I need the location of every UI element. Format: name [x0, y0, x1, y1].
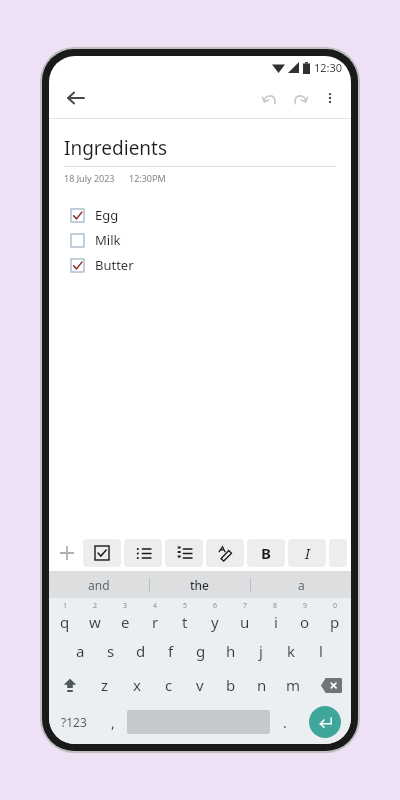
button[interactable]: Egg	[49, 204, 351, 226]
button[interactable]: Checklist	[83, 539, 121, 567]
staticText: and	[88, 577, 110, 593]
button[interactable]: Shift	[49, 668, 91, 702]
staticText: ?123	[61, 714, 87, 730]
button[interactable]: 1	[50, 598, 80, 634]
staticText: z	[101, 675, 109, 695]
button[interactable]: Draw	[206, 539, 244, 567]
staticText: q	[60, 612, 70, 632]
staticText: I	[305, 543, 310, 563]
button[interactable]: x	[123, 668, 151, 702]
button[interactable]: Bold	[247, 539, 285, 567]
staticText: 7	[243, 601, 248, 611]
button[interactable]: ,	[98, 702, 127, 742]
staticText: k	[287, 641, 296, 661]
button[interactable]: s	[96, 634, 126, 668]
staticText: l	[319, 641, 323, 661]
staticText: 0	[333, 601, 338, 611]
button[interactable]: Backspace	[310, 668, 351, 702]
staticText: 4	[153, 601, 158, 611]
staticText: r	[152, 612, 159, 632]
button[interactable]: d	[126, 634, 156, 668]
button[interactable]: z	[91, 668, 119, 702]
staticText: 3	[123, 601, 128, 611]
button[interactable]: 0	[320, 598, 350, 634]
staticText: 5	[183, 601, 188, 611]
staticText: 6	[213, 601, 218, 611]
staticText: 8	[273, 601, 278, 611]
button[interactable]: 9	[290, 598, 320, 634]
button[interactable]: n	[248, 668, 276, 702]
staticText: 12:30	[314, 60, 343, 75]
staticText: 9	[303, 601, 308, 611]
button[interactable]: ?123	[49, 702, 98, 742]
staticText: 18 July 2023	[64, 172, 115, 184]
button[interactable]: Back	[59, 82, 91, 114]
button[interactable]: 5	[170, 598, 200, 634]
button[interactable]: Butter	[49, 254, 351, 276]
button[interactable]: a	[65, 634, 95, 668]
button[interactable]: Add	[51, 537, 83, 569]
staticText: h	[226, 641, 236, 661]
button[interactable]: c	[155, 668, 183, 702]
button[interactable]: .	[270, 702, 299, 742]
staticText: a	[298, 577, 305, 593]
staticText: n	[257, 675, 267, 695]
button[interactable]: m	[279, 668, 307, 702]
button[interactable]: f	[156, 634, 186, 668]
staticText: Ingredients	[64, 135, 168, 161]
button[interactable]: Milk	[49, 229, 351, 251]
staticText: 1	[63, 601, 68, 611]
button[interactable]: 8	[260, 598, 290, 634]
button[interactable]: the	[150, 571, 250, 598]
button[interactable]: Numbered list	[165, 539, 203, 567]
button[interactable]: k	[276, 634, 306, 668]
staticText: w	[89, 612, 101, 632]
staticText: .	[283, 713, 287, 732]
staticText: d	[136, 641, 146, 661]
staticText: u	[240, 612, 250, 632]
button[interactable]: 6	[200, 598, 230, 634]
button[interactable]: 3	[110, 598, 140, 634]
staticText: v	[196, 675, 204, 695]
staticText: j	[259, 641, 263, 661]
staticText: the	[190, 577, 210, 593]
button[interactable]: 4	[140, 598, 170, 634]
staticText: o	[300, 612, 310, 632]
button[interactable]: b	[217, 668, 245, 702]
staticText: 2	[93, 601, 98, 611]
button[interactable]: g	[186, 634, 216, 668]
staticText: g	[196, 641, 206, 661]
staticText: c	[165, 675, 173, 695]
staticText: m	[286, 675, 301, 695]
staticText: y	[211, 612, 219, 632]
staticText: i	[274, 612, 278, 632]
staticText: Egg	[95, 206, 119, 224]
button[interactable]: j	[246, 634, 276, 668]
staticText: ,	[111, 713, 115, 732]
staticText: p	[330, 612, 340, 632]
button[interactable]: and	[49, 571, 149, 598]
button[interactable]: Undo	[255, 83, 285, 113]
staticText: x	[133, 675, 141, 695]
staticText: b	[226, 675, 236, 695]
staticText: e	[121, 612, 130, 632]
button[interactable]: v	[186, 668, 214, 702]
button[interactable]: 2	[80, 598, 110, 634]
button[interactable]: Bulleted list	[124, 539, 162, 567]
button[interactable]: Italic	[288, 539, 326, 567]
staticText: f	[168, 641, 174, 661]
button[interactable]: Enter	[309, 706, 341, 738]
button[interactable]: More options	[315, 83, 345, 113]
staticText: a	[76, 641, 85, 661]
staticText: s	[107, 641, 115, 661]
button[interactable]: a	[251, 571, 351, 598]
button[interactable]: 7	[230, 598, 260, 634]
staticText: 12:30PM	[129, 172, 166, 184]
staticText: Butter	[95, 256, 134, 274]
button[interactable]: h	[216, 634, 246, 668]
staticText: B	[261, 543, 271, 563]
button[interactable]: l	[306, 634, 336, 668]
button[interactable]: Redo	[285, 83, 315, 113]
